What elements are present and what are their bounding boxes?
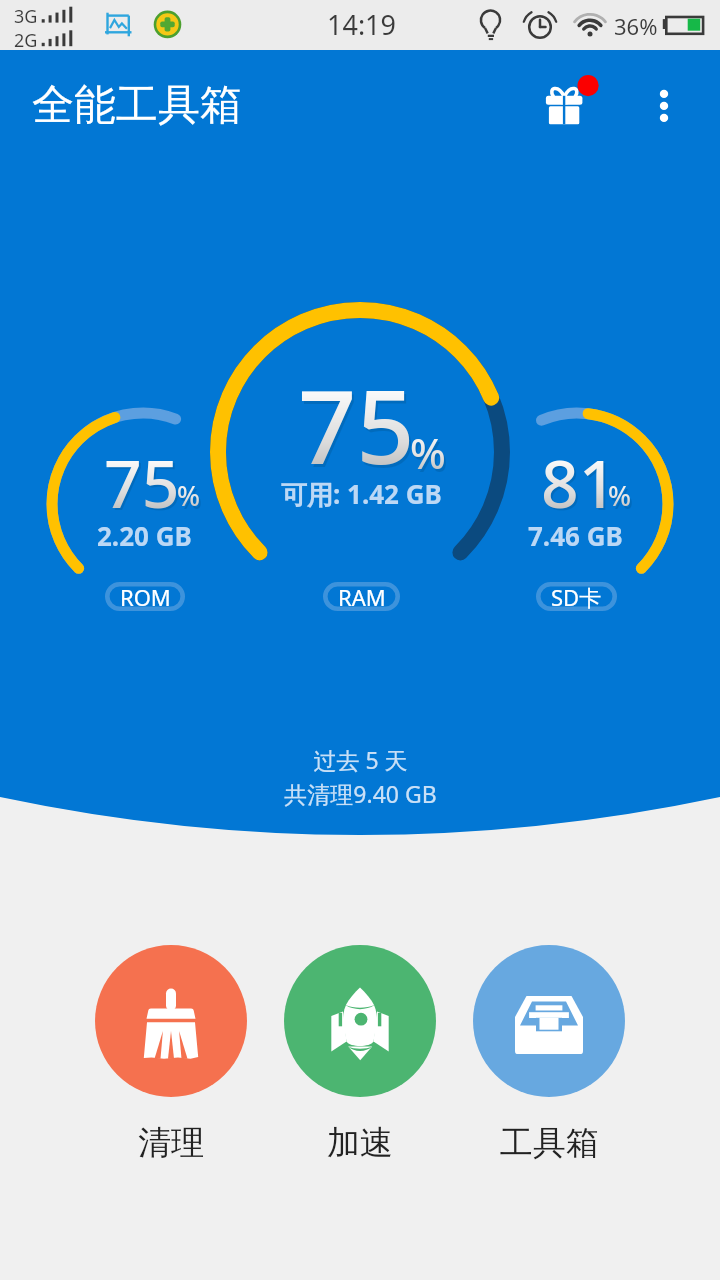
staticText: 清理 — [138, 1122, 204, 1164]
button[interactable]: ROM — [105, 582, 185, 611]
button[interactable]: More options — [640, 76, 688, 124]
button[interactable]: 清理 — [95, 945, 247, 1097]
staticText: 75 — [104, 437, 180, 527]
staticText: 81 — [541, 437, 617, 527]
staticText: 可用: 1.42 GB — [281, 476, 442, 512]
staticText: 7.46 GB — [528, 518, 623, 553]
staticText: 36% — [614, 11, 658, 41]
button[interactable]: Gift — [540, 76, 604, 140]
staticText: 75 — [106, 439, 182, 529]
staticText: % — [177, 477, 201, 514]
staticText: SD卡 — [551, 582, 602, 611]
staticText: 75 — [298, 355, 415, 494]
staticText: 2G — [14, 28, 38, 53]
staticText: 加速 — [327, 1122, 393, 1164]
button[interactable]: RAM — [323, 582, 400, 611]
staticText: RAM — [338, 582, 386, 611]
staticText: 过去 5 天 — [313, 744, 408, 775]
staticText: ROM — [120, 582, 171, 611]
staticText: 全能工具箱 — [32, 79, 242, 132]
staticText: 75 — [300, 358, 417, 497]
staticText: % — [412, 427, 448, 484]
button[interactable]: 工具箱 — [473, 945, 625, 1097]
staticText: % — [179, 480, 203, 517]
button[interactable]: 加速 — [284, 945, 436, 1097]
button[interactable]: SD卡 — [536, 582, 617, 611]
staticText: 共清理9.40 GB — [284, 778, 437, 809]
staticText: 14:19 — [327, 6, 397, 43]
staticText: 81 — [543, 439, 619, 529]
staticText: 3G — [14, 4, 38, 29]
staticText: % — [610, 480, 634, 517]
staticText: % — [608, 477, 632, 514]
staticText: 工具箱 — [500, 1122, 599, 1164]
staticText: 2.20 GB — [97, 518, 192, 553]
staticText: % — [410, 424, 446, 481]
